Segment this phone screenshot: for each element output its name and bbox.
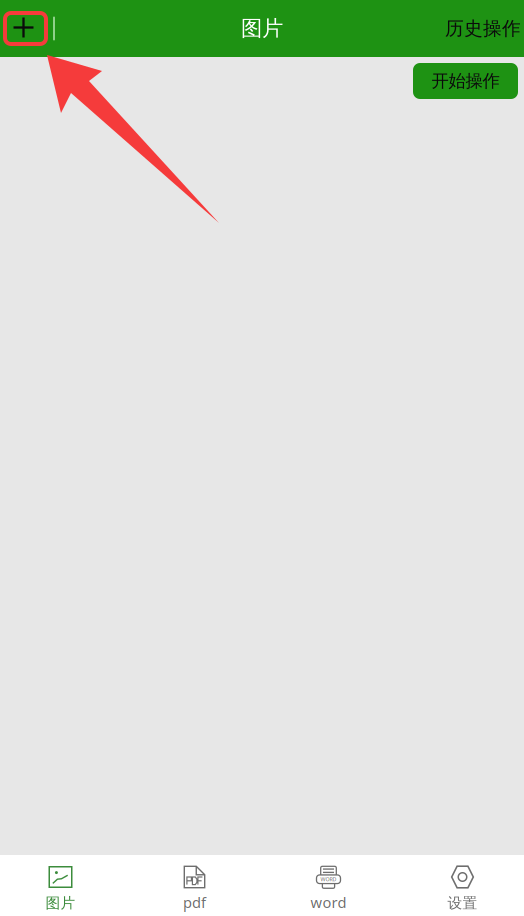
staticText: 开始操作	[431, 70, 499, 92]
staticText: 设置	[447, 894, 477, 912]
staticText: 图片	[241, 15, 283, 42]
staticText: word	[310, 892, 346, 912]
button[interactable]: 图片	[0, 855, 121, 916]
button[interactable]: Add	[1, 10, 46, 45]
staticText: 历史操作	[445, 17, 521, 40]
button[interactable]: 设置	[402, 855, 523, 916]
button[interactable]: pdf	[134, 855, 255, 916]
button[interactable]: WORD	[268, 855, 389, 916]
staticText: 图片	[45, 894, 75, 912]
staticText: WORD	[320, 876, 336, 883]
staticText: pdf	[183, 892, 206, 912]
button[interactable]: 历史操作	[435, 10, 524, 47]
button[interactable]: 开始操作	[413, 63, 518, 99]
